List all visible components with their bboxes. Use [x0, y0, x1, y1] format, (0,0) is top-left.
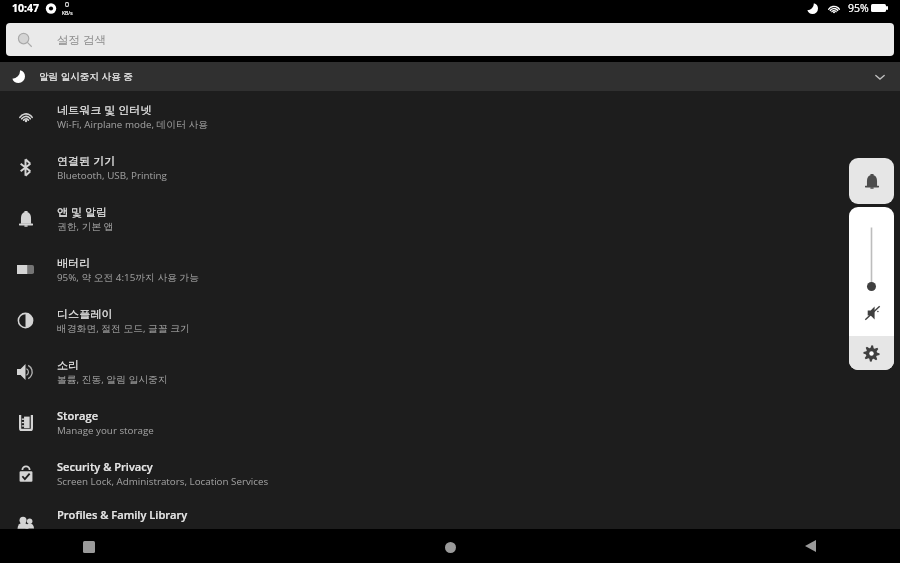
staticText: Wi-Fi, Airplane mode, 데이터 사용: [57, 118, 208, 131]
button[interactable]: 알림 일시중지 사용 중: [0, 62, 900, 91]
staticText: Bluetooth, USB, Printing: [57, 169, 167, 182]
staticText: 권한, 기본 앱: [57, 220, 114, 233]
button[interactable]: 네트워크 및 인터넷: [0, 91, 900, 142]
staticText: 앱 및 알림: [57, 204, 108, 219]
button[interactable]: Recents: [68, 529, 109, 563]
button[interactable]: Back: [790, 529, 831, 563]
staticText: Screen Lock, Administrators, Location Se…: [57, 475, 269, 488]
button[interactable]: Volume slider: [849, 207, 894, 336]
button[interactable]: 연결된 기기: [0, 142, 900, 193]
button[interactable]: 앱 및 알림: [0, 193, 900, 244]
button[interactable]: Storage: [0, 397, 900, 448]
staticText: 배터리: [57, 256, 91, 270]
button[interactable]: Home: [430, 529, 471, 563]
staticText: 연결된 기기: [57, 153, 116, 168]
button[interactable]: 디스플레이: [0, 295, 900, 346]
staticText: 95%: [848, 1, 869, 15]
staticText: Storage: [57, 408, 99, 423]
button[interactable]: Security & Privacy: [0, 448, 900, 499]
staticText: 알림 일시중지 사용 중: [39, 70, 133, 83]
button[interactable]: Profiles & Family Library: [0, 499, 900, 529]
button[interactable]: 설정 검색: [6, 23, 894, 56]
button[interactable]: Sound settings: [849, 336, 894, 370]
staticText: Profiles & Family Library: [57, 507, 188, 522]
staticText: 소리: [57, 358, 80, 372]
staticText: 설정 검색: [57, 32, 106, 48]
staticText: 배경화면, 절전 모드, 글꼴 크기: [57, 322, 190, 335]
staticText: 10:47: [12, 1, 40, 15]
staticText: 0: [65, 0, 70, 10]
staticText: KB/s: [62, 10, 73, 17]
staticText: 네트워크 및 인터넷: [57, 102, 152, 117]
button[interactable]: 배터리: [0, 244, 900, 295]
staticText: 디스플레이: [57, 307, 113, 321]
staticText: Manage your storage: [57, 424, 154, 437]
button[interactable]: 소리: [0, 346, 900, 397]
staticText: 95%, 약 오전 4:15까지 사용 가능: [57, 271, 200, 284]
button[interactable]: Ringer mode: [849, 158, 894, 204]
staticText: 볼륨, 진동, 알림 일시중지: [57, 373, 168, 386]
button[interactable]: Expand: [868, 65, 892, 89]
staticText: Security & Privacy: [57, 459, 153, 474]
